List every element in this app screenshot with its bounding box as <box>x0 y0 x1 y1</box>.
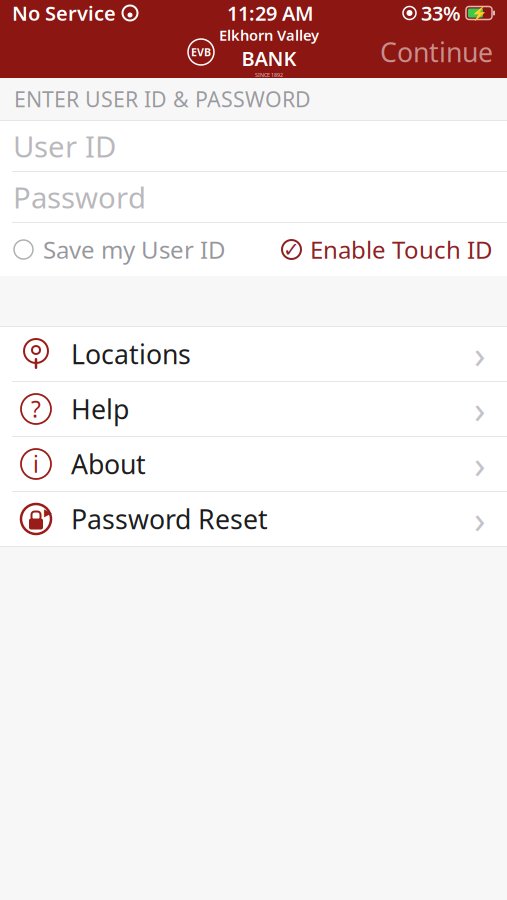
staticText: Help <box>71 391 129 427</box>
staticText: BANK <box>241 45 296 71</box>
staticText: Enable Touch ID <box>310 234 493 265</box>
button[interactable]: Continue <box>366 26 507 78</box>
staticText: › <box>474 384 486 434</box>
button[interactable]: ? <box>0 382 507 436</box>
staticText: About <box>71 446 146 482</box>
staticText: ? <box>31 394 41 424</box>
staticText: SINCE 1892 <box>255 71 283 79</box>
button[interactable]: Locations <box>0 327 507 381</box>
staticText: › <box>474 329 486 379</box>
staticText: i <box>33 449 39 479</box>
staticText: ▸ <box>44 503 52 521</box>
staticText: ENTER USER ID & PASSWORD <box>14 85 311 113</box>
staticText: › <box>474 494 486 544</box>
staticText: 11:29 AM <box>227 0 314 26</box>
staticText: › <box>474 439 486 489</box>
staticText: Locations <box>71 336 191 372</box>
staticText: Password Reset <box>71 501 268 537</box>
button[interactable]: ✓ <box>281 224 493 275</box>
staticText: No Service <box>12 0 116 26</box>
button[interactable]: i <box>0 437 507 491</box>
staticText: 33% <box>421 0 461 26</box>
staticText: Elkhorn Valley <box>219 25 319 45</box>
staticText: Save my User ID <box>43 234 226 265</box>
button[interactable]: ▸ <box>0 492 507 546</box>
staticText: ⚡ <box>470 5 487 21</box>
staticText: Continue <box>380 34 493 70</box>
staticText: EVB <box>191 45 211 59</box>
staticText: Password <box>13 177 146 216</box>
button[interactable]: Save my User ID <box>14 224 226 275</box>
staticText: User ID <box>13 126 116 165</box>
staticText: ✓ <box>283 238 300 261</box>
